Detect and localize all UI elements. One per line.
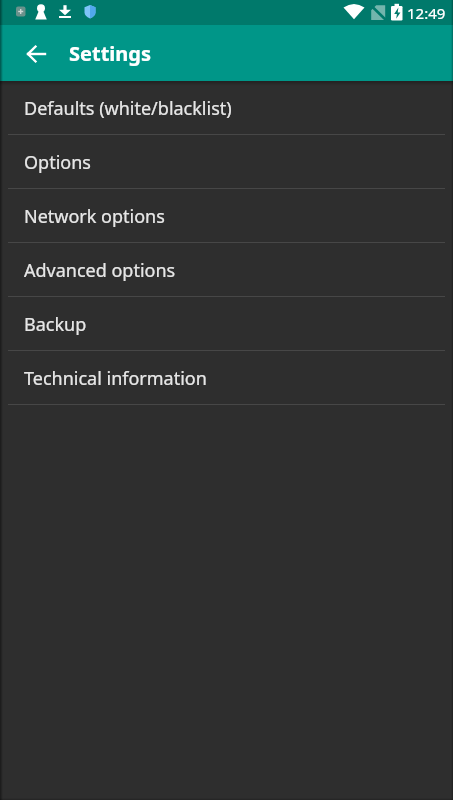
staticText: 12:49 [407, 3, 446, 23]
button[interactable]: Advanced options [0, 243, 453, 297]
staticText: Technical information [24, 366, 207, 391]
staticText: Options [24, 150, 91, 175]
staticText: Backup [24, 312, 87, 337]
staticText: Network options [24, 204, 165, 229]
staticText: Settings [69, 40, 151, 67]
button[interactable]: Technical information [0, 351, 453, 405]
button[interactable] [0, 25, 56, 81]
button[interactable]: Options [0, 135, 453, 189]
staticText: Advanced options [24, 258, 176, 283]
button[interactable]: Defaults (white/blacklist) [0, 81, 453, 135]
staticText: Defaults (white/blacklist) [24, 96, 232, 121]
button[interactable]: Network options [0, 189, 453, 243]
button[interactable]: Backup [0, 297, 453, 351]
